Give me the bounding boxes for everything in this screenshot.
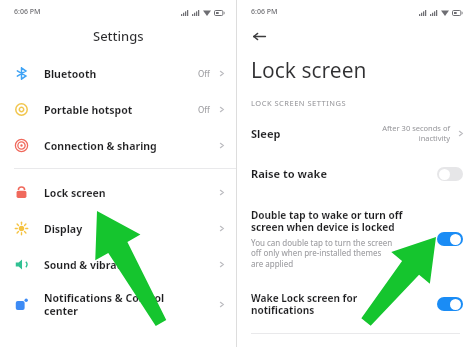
staticText: Double tap to wake or turn off screen wh…	[251, 208, 403, 234]
staticText: Bluetooth	[44, 67, 198, 81]
button[interactable]: Double tap to wake or turn off screen wh…	[237, 208, 474, 270]
staticText: Notifications & Control center	[44, 291, 217, 318]
button[interactable]: Notifications & Control center	[0, 291, 236, 318]
staticText: 6:06 PM	[251, 7, 278, 17]
button[interactable]: Bluetooth	[0, 66, 236, 81]
staticText: Sleep	[251, 126, 281, 141]
button[interactable]: Back	[249, 26, 269, 46]
button[interactable]: Raise to wake	[237, 166, 474, 181]
staticText: You can double tap to turn the screen of…	[251, 237, 393, 270]
staticText: LOCK SCREEN SETTINGS	[251, 98, 347, 108]
staticText: After 30 seconds of inactivity	[382, 123, 450, 143]
staticText: 6:06 PM	[14, 7, 41, 17]
button[interactable]: Lock screen	[0, 185, 236, 200]
button[interactable]: Sleep	[237, 123, 474, 143]
button[interactable]: Switch on	[437, 232, 463, 246]
staticText: Portable hotspot	[44, 103, 198, 117]
staticText: Off	[198, 104, 210, 115]
button[interactable]: Wake Lock screen for notifications	[237, 291, 474, 317]
staticText: Off	[198, 68, 210, 79]
button[interactable]: Switch off	[437, 167, 463, 181]
staticText: Lock screen	[251, 56, 367, 85]
staticText: Settings	[93, 27, 144, 45]
button[interactable]: Display	[0, 221, 236, 236]
button[interactable]: Switch on	[437, 297, 463, 311]
staticText: Sound & vibration	[44, 258, 217, 272]
button[interactable]: Connection & sharing	[0, 138, 236, 153]
button[interactable]: Portable hotspot	[0, 102, 236, 117]
staticText: Wake Lock screen for notifications	[251, 291, 437, 317]
staticText: Raise to wake	[251, 166, 437, 181]
staticText: Connection & sharing	[44, 139, 217, 153]
button[interactable]: Sound & vibration	[0, 257, 236, 272]
staticText: Display	[44, 222, 217, 236]
staticText: Lock screen	[44, 186, 217, 200]
